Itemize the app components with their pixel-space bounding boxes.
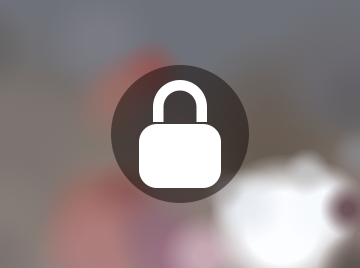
button[interactable]: Locked: [111, 65, 249, 203]
